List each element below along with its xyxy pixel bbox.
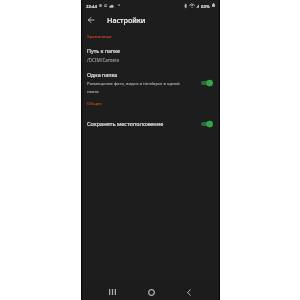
button[interactable]: Одна папка [81,68,220,96]
button[interactable]: Назад [181,284,197,300]
staticText: Одна папка [87,71,118,78]
button[interactable]: Обзор [104,284,120,300]
staticText: Путь к папке [87,47,121,54]
button[interactable]: Переключатель [201,79,213,87]
staticText: Хранилище [87,33,112,39]
staticText: Сохранять местоположение [87,120,164,128]
button[interactable]: Путь к папке [81,44,220,65]
staticText: Размещение фото, видео и timelapse в одн… [87,81,183,94]
staticText: Настройки [107,15,146,25]
staticText: 63% [201,3,210,9]
staticText: /DCIM/Camera [87,57,120,63]
staticText: 22:44 [86,3,97,9]
button[interactable]: Домой [143,284,159,300]
staticText: Общие [87,100,102,106]
button[interactable]: Переключатель [201,120,213,128]
button[interactable]: Назад [84,13,97,26]
button[interactable]: Сохранять местоположение [81,114,220,133]
